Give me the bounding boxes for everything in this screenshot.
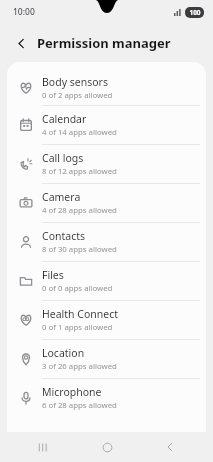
button[interactable]: Camera <box>7 184 206 222</box>
button[interactable]: Microphone <box>7 379 206 417</box>
staticText: Location <box>42 346 85 360</box>
staticText: 100 <box>189 8 201 17</box>
staticText: Calendar <box>42 112 87 126</box>
staticText: 3 of 26 apps allowed <box>42 361 117 372</box>
staticText: 8 of 30 apps allowed <box>42 244 117 255</box>
button[interactable]: Back <box>150 433 190 461</box>
staticText: 0 of 1 apps allowed <box>42 322 113 333</box>
staticText: 4 of 14 apps allowed <box>42 127 117 138</box>
button[interactable]: Location <box>7 340 206 378</box>
button[interactable]: Body sensors <box>7 71 206 105</box>
button[interactable]: Files <box>7 262 206 300</box>
staticText: 6 of 28 apps allowed <box>42 400 117 411</box>
button[interactable]: Recent apps <box>23 433 63 461</box>
staticText: 10:00 <box>13 6 35 18</box>
staticText: Microphone <box>42 385 102 399</box>
staticText: Call logs <box>42 151 84 165</box>
button[interactable]: Home <box>87 433 127 461</box>
staticText: Camera <box>42 190 81 204</box>
button[interactable]: Call logs <box>7 145 206 183</box>
staticText: 0 of 2 apps allowed <box>42 90 113 101</box>
button[interactable]: Back <box>9 31 33 55</box>
staticText: Health Connect <box>42 307 119 321</box>
staticText: Files <box>42 268 64 282</box>
button[interactable]: Health Connect <box>7 301 206 339</box>
button[interactable]: Contacts <box>7 223 206 261</box>
staticText: 0 of 0 apps allowed <box>42 283 113 294</box>
staticText: 4 of 28 apps allowed <box>42 205 117 216</box>
button[interactable]: Calendar <box>7 106 206 144</box>
staticText: 8 of 12 apps allowed <box>42 166 117 177</box>
staticText: Body sensors <box>42 75 108 89</box>
staticText: Contacts <box>42 229 86 243</box>
staticText: Permission manager <box>37 34 171 52</box>
